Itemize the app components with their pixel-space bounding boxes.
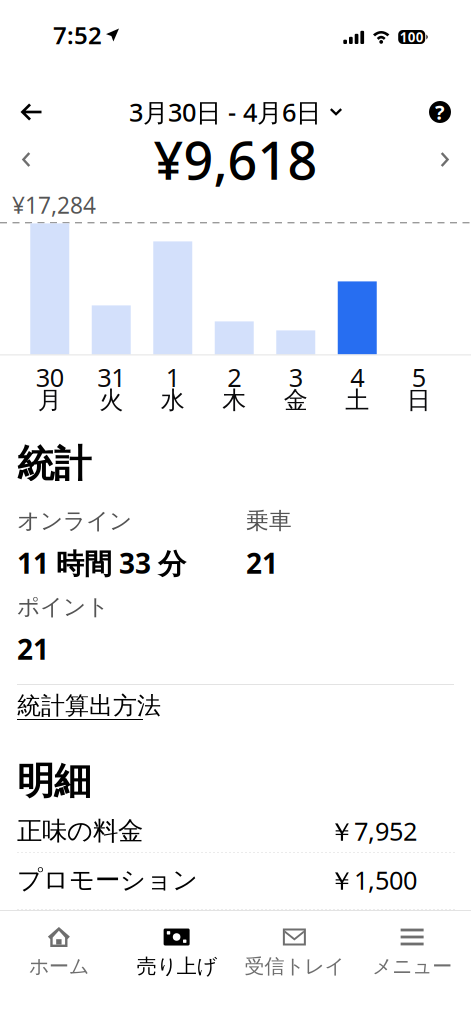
staticText: ポイント bbox=[17, 593, 109, 621]
staticText: ¥17,284 bbox=[12, 190, 96, 220]
button[interactable]: 次の週 bbox=[419, 130, 471, 188]
staticText: ￥1,500 bbox=[329, 863, 417, 897]
staticText: 3月30日 - 4月6日 bbox=[129, 95, 321, 129]
staticText: 21 bbox=[17, 630, 49, 668]
staticText: 3 bbox=[289, 360, 303, 394]
staticText: メニュー bbox=[372, 954, 452, 979]
staticText: 5 bbox=[412, 360, 426, 394]
staticText: 金 bbox=[284, 385, 308, 415]
staticText: 水 bbox=[161, 385, 185, 415]
button[interactable]: 戻る bbox=[0, 81, 62, 143]
staticText: 21 bbox=[246, 544, 278, 582]
button[interactable]: 3月30日 - 4月6日 bbox=[129, 81, 342, 143]
staticText: 統計算出方法 bbox=[17, 691, 161, 720]
staticText: 30 bbox=[36, 360, 64, 394]
button[interactable]: 正味の料金 bbox=[17, 814, 454, 848]
staticText: 11 時間 33 分 bbox=[17, 544, 186, 582]
staticText: 100 bbox=[400, 28, 424, 46]
staticText: オンライン bbox=[17, 507, 132, 535]
staticText: 日 bbox=[407, 385, 431, 415]
staticText: 乗車 bbox=[246, 507, 292, 535]
button[interactable]: 統計算出方法 bbox=[17, 685, 454, 720]
staticText: 7:52 bbox=[53, 19, 102, 51]
staticText: 月 bbox=[38, 385, 62, 415]
staticText: 火 bbox=[99, 385, 123, 415]
button[interactable]: ヘルプ bbox=[409, 81, 471, 143]
staticText: 受信トレイ bbox=[244, 954, 344, 979]
staticText: 正味の料金 bbox=[17, 815, 143, 846]
staticText: 土 bbox=[345, 385, 369, 415]
button[interactable]: 前の週 bbox=[0, 130, 52, 188]
staticText: 統計 bbox=[17, 441, 91, 487]
staticText: 4 bbox=[350, 360, 364, 394]
staticText: ¥9,618 bbox=[153, 125, 317, 194]
staticText: 1 bbox=[166, 360, 180, 394]
staticText: ホーム bbox=[29, 954, 89, 979]
staticText: 売り上げ bbox=[137, 954, 217, 979]
button[interactable]: プロモーション bbox=[17, 863, 454, 897]
staticText: ? bbox=[435, 99, 445, 125]
button[interactable]: 受信トレイ bbox=[235, 911, 353, 1024]
button[interactable]: ホーム bbox=[0, 911, 118, 1024]
staticText: プロモーション bbox=[17, 864, 198, 895]
staticText: 木 bbox=[222, 385, 246, 415]
staticText: ￥7,952 bbox=[329, 814, 417, 848]
staticText: 31 bbox=[97, 360, 125, 394]
button[interactable]: 売り上げ bbox=[118, 911, 236, 1024]
staticText: 2 bbox=[227, 360, 241, 394]
staticText: 明細 bbox=[17, 758, 91, 804]
button[interactable]: メニュー bbox=[353, 911, 471, 1024]
